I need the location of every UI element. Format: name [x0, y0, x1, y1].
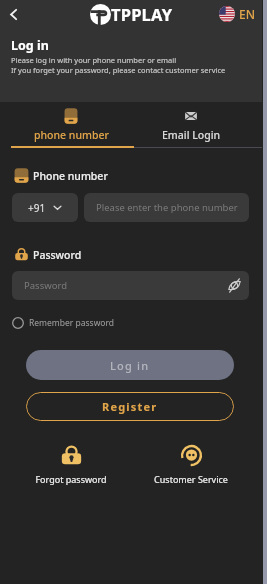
staticText: TPPLAY	[111, 3, 173, 25]
staticText: Remember password	[29, 317, 115, 329]
button[interactable]: Register	[26, 392, 234, 421]
staticText: +91	[28, 201, 46, 215]
staticText: Please log in with your phone number or …	[11, 55, 177, 65]
button[interactable]: Show password	[220, 271, 249, 300]
staticText: Phone number	[33, 169, 108, 183]
staticText: phone number	[34, 128, 109, 142]
button[interactable]: Email Login	[131, 102, 251, 148]
button[interactable]: +91	[12, 193, 78, 222]
staticText: Register	[102, 399, 158, 414]
staticText: Forgot password	[35, 473, 107, 485]
staticText: Please enter the phone number	[96, 201, 238, 214]
staticText: Email Login	[162, 128, 221, 142]
staticText: Log in	[110, 358, 150, 373]
staticText: If you forget your password, please cont…	[11, 65, 226, 75]
button[interactable]: Remember password	[12, 316, 115, 330]
staticText: Password	[33, 248, 82, 262]
button[interactable]: Please enter the phone number	[84, 193, 249, 222]
button[interactable]: phone number	[11, 102, 131, 148]
button[interactable]: Password	[12, 271, 249, 300]
staticText: EN	[239, 6, 255, 22]
staticText: Password	[24, 279, 67, 292]
button[interactable]: Log in	[26, 350, 234, 380]
button[interactable]: EN	[219, 6, 262, 22]
button[interactable]: Back	[0, 1, 26, 27]
staticText: Log in	[11, 37, 49, 54]
button[interactable]: Forgot password	[11, 444, 131, 485]
button[interactable]: Customer Service	[131, 444, 251, 485]
staticText: Customer Service	[154, 473, 228, 485]
